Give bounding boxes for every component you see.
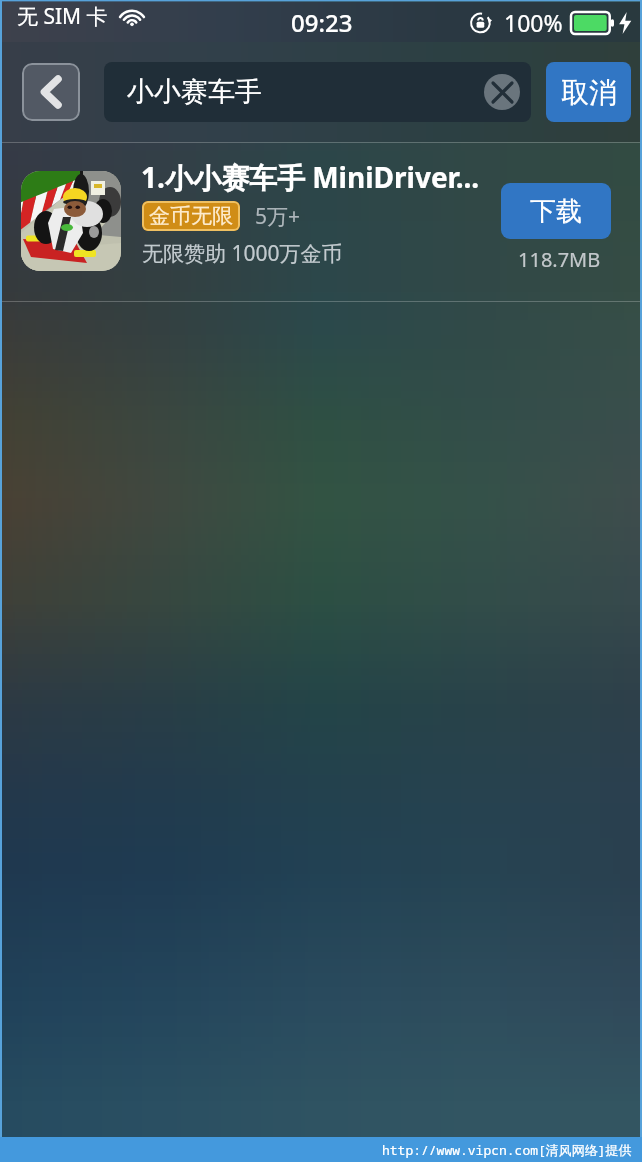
staticText: 5万+ bbox=[255, 202, 301, 231]
button[interactable]: Back bbox=[22, 63, 80, 121]
staticText: 118.7MB bbox=[518, 246, 601, 273]
staticText: 金币无限 bbox=[149, 203, 233, 229]
staticText: 1.小小赛车手 MiniDriver... bbox=[141, 158, 480, 196]
button[interactable]: 小小赛车手 bbox=[104, 62, 531, 122]
button[interactable]: Clear bbox=[484, 74, 520, 110]
button[interactable]: 下载 bbox=[501, 183, 611, 239]
staticText: 下载 bbox=[530, 195, 582, 228]
staticText: http://www.vipcn.com[清风网络]提供 bbox=[382, 1141, 632, 1159]
staticText: 09:23 bbox=[291, 6, 353, 39]
staticText: 取消 bbox=[561, 75, 617, 110]
staticText: 无限赞助 1000万金币 bbox=[142, 239, 343, 268]
button[interactable]: 1.小小赛车手 MiniDriver... bbox=[2, 143, 640, 301]
button[interactable]: 取消 bbox=[546, 62, 631, 122]
staticText: 100% bbox=[504, 7, 563, 38]
staticText: 无 SIM 卡 bbox=[17, 2, 108, 31]
staticText: 小小赛车手 bbox=[127, 75, 262, 109]
